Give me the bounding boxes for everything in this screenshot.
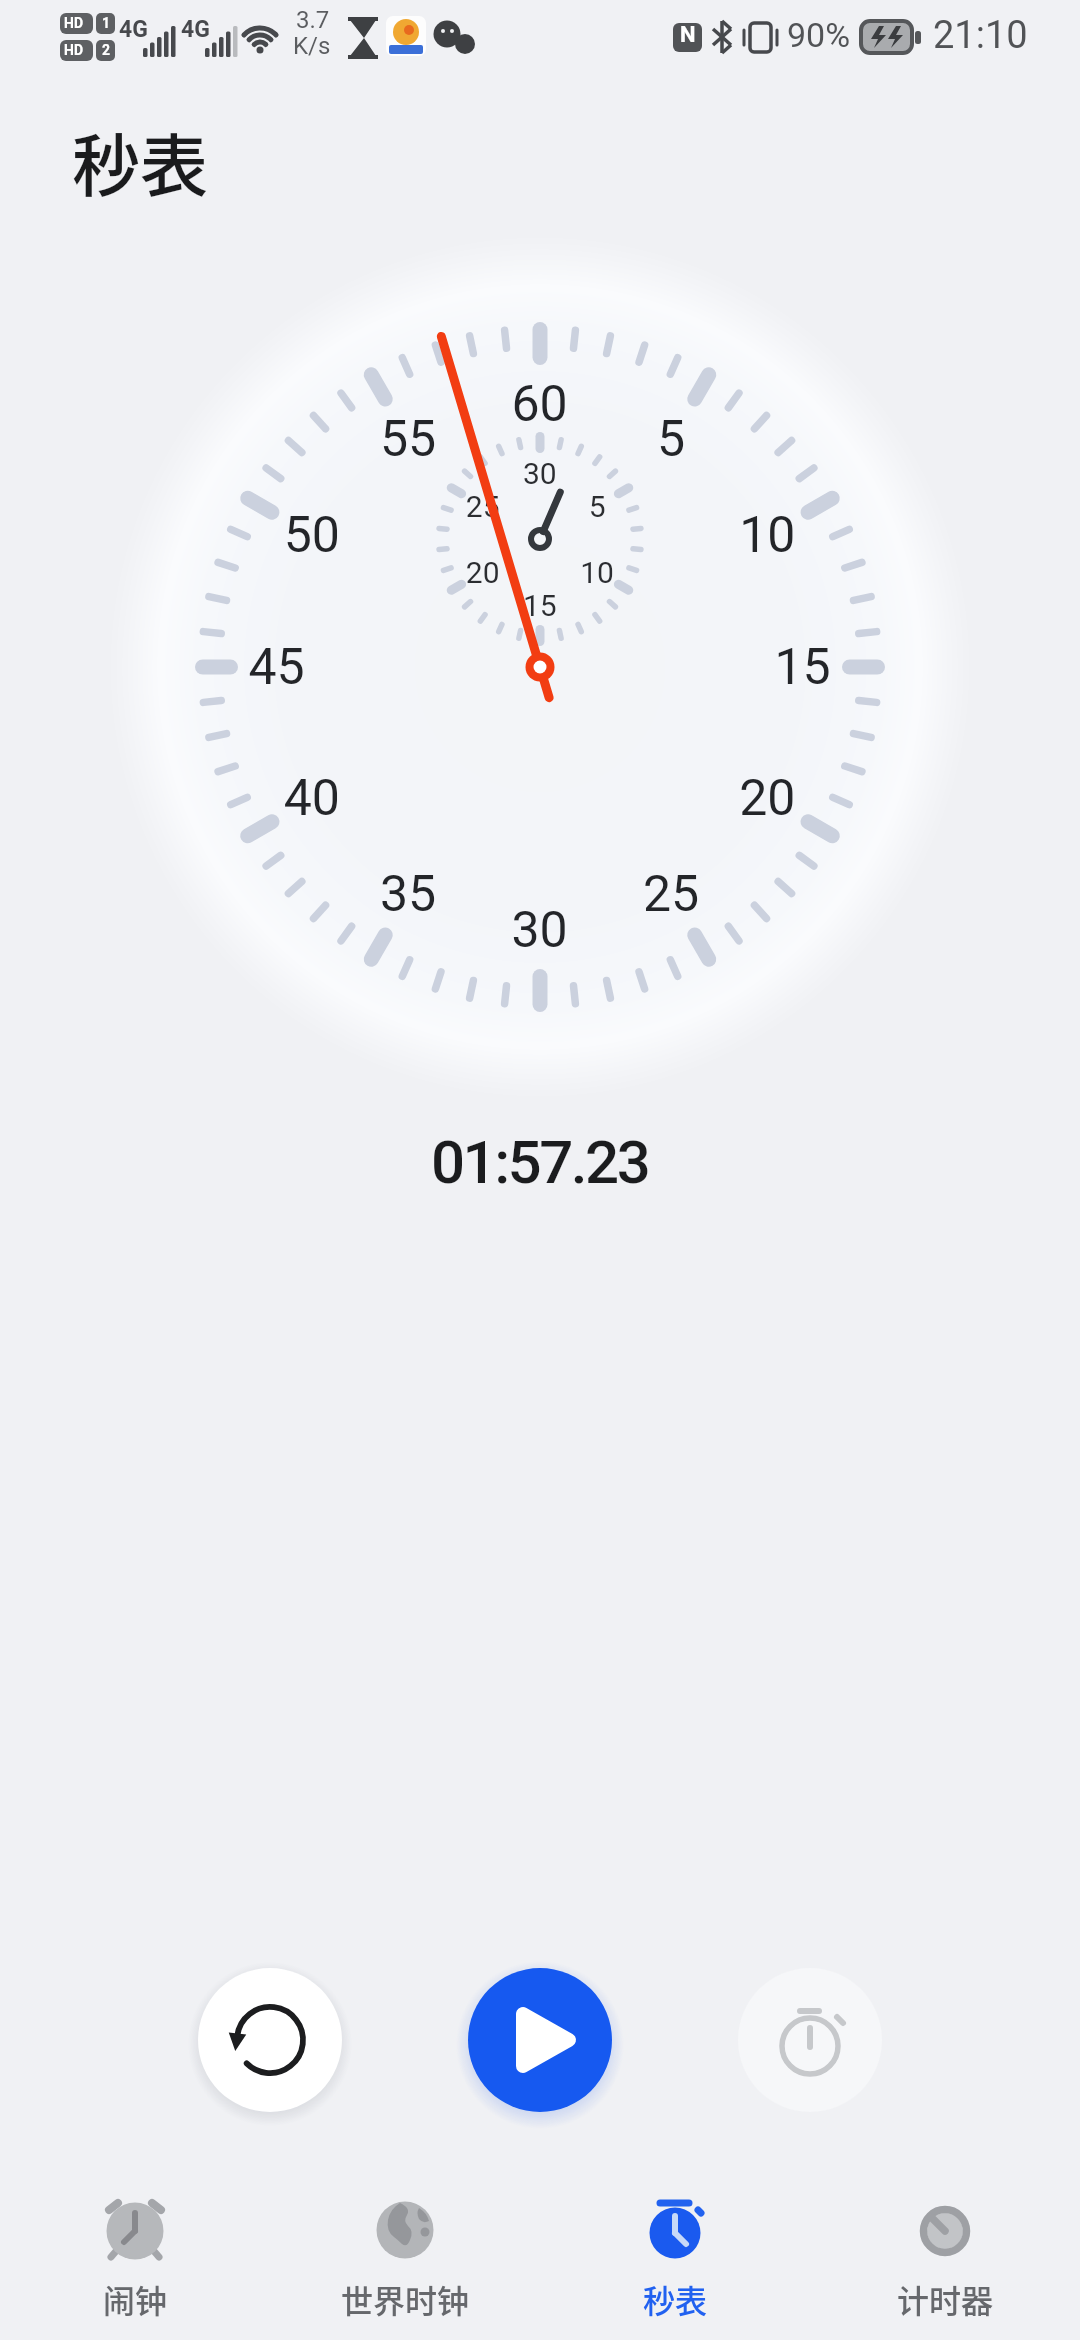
staticText: 1	[102, 15, 111, 31]
staticText: 4G	[181, 16, 210, 43]
button[interactable]	[198, 1968, 342, 2112]
staticText: 秒表	[643, 2276, 708, 2322]
staticText: 01:57.23	[431, 1127, 649, 1197]
staticText: K/s	[293, 32, 331, 60]
staticText: 2	[102, 42, 111, 58]
staticText: 3.7	[296, 6, 330, 34]
staticText: 90%	[787, 15, 851, 55]
staticText: 4G	[119, 16, 148, 43]
button[interactable]: 闹钟	[0, 2178, 270, 2340]
staticText: HD	[64, 42, 84, 58]
button[interactable]	[468, 1968, 612, 2112]
staticText: N	[680, 22, 696, 48]
staticText: 闹钟	[103, 2276, 168, 2322]
button[interactable]	[738, 1968, 882, 2112]
button[interactable]: 秒表	[540, 2178, 810, 2340]
staticText: HD	[64, 15, 84, 31]
staticText: 世界时钟	[341, 2276, 470, 2322]
staticText: 21:10	[933, 13, 1028, 58]
staticText: 计时器	[897, 2276, 994, 2322]
button[interactable]: 计时器	[810, 2178, 1080, 2340]
staticText: 秒表	[72, 112, 209, 210]
button[interactable]: 世界时钟	[270, 2178, 540, 2340]
